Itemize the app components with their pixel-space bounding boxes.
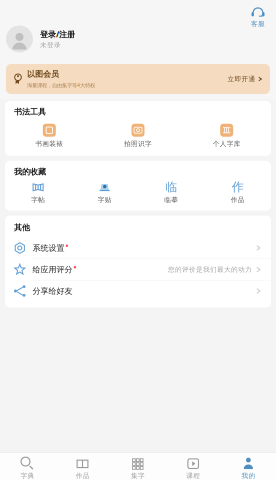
button[interactable]: 字贴 bbox=[71, 181, 138, 205]
staticText: 海量课程，自由集字等4大特权 bbox=[27, 82, 95, 89]
staticText: 立即开通 bbox=[227, 75, 255, 83]
button[interactable]: 以图会员 bbox=[6, 64, 270, 94]
button[interactable]: 集字 bbox=[110, 453, 166, 479]
button[interactable]: 临 bbox=[138, 181, 204, 205]
staticText: 字贴 bbox=[98, 196, 112, 204]
staticText: 分享给好友 bbox=[32, 286, 72, 296]
button[interactable]: 分享给好友 bbox=[5, 280, 271, 301]
staticText: 登录/注册 bbox=[40, 29, 75, 39]
staticText: 集字 bbox=[131, 472, 145, 480]
button[interactable]: 给应用评分 bbox=[5, 259, 271, 280]
staticText: 系统设置 bbox=[32, 243, 64, 253]
staticText: 作 bbox=[232, 180, 244, 194]
staticText: 未登录 bbox=[40, 41, 61, 49]
button[interactable]: 课程 bbox=[166, 453, 221, 479]
staticText: 字帖 bbox=[31, 196, 45, 204]
button[interactable]: 作品 bbox=[55, 453, 110, 479]
button[interactable]: 拍照识字 bbox=[94, 122, 182, 150]
staticText: 书法工具 bbox=[14, 107, 46, 117]
button[interactable]: 个人字库 bbox=[182, 122, 271, 150]
staticText: 给应用评分 bbox=[32, 265, 72, 274]
staticText: 临摹 bbox=[164, 196, 178, 204]
staticText: 课程 bbox=[186, 472, 200, 480]
staticText: 我的 bbox=[241, 472, 255, 480]
button[interactable]: 字典 bbox=[0, 453, 55, 479]
staticText: 作品 bbox=[231, 196, 245, 204]
button[interactable]: 书画装裱 bbox=[5, 122, 94, 150]
button[interactable]: 字帖 bbox=[5, 181, 71, 205]
button[interactable]: 我的 bbox=[221, 453, 276, 479]
staticText: 其他 bbox=[14, 223, 30, 232]
button[interactable]: 客服 bbox=[247, 7, 269, 27]
staticText: 作品 bbox=[76, 472, 90, 480]
staticText: 书画装裱 bbox=[35, 140, 63, 148]
staticText: 字典 bbox=[21, 472, 35, 480]
button[interactable]: 登录/注册 bbox=[0, 24, 276, 54]
staticText: 个人字库 bbox=[213, 140, 241, 148]
button[interactable]: 系统设置 bbox=[5, 237, 271, 259]
staticText: 以图会员 bbox=[27, 69, 59, 79]
staticText: 您的评价是我们最大的动力 bbox=[168, 265, 252, 274]
staticText: 我的收藏 bbox=[14, 167, 46, 177]
staticText: 临 bbox=[165, 180, 177, 194]
staticText: 客服 bbox=[251, 20, 265, 28]
button[interactable]: 作 bbox=[204, 181, 271, 205]
staticText: 拍照识字 bbox=[124, 140, 152, 148]
